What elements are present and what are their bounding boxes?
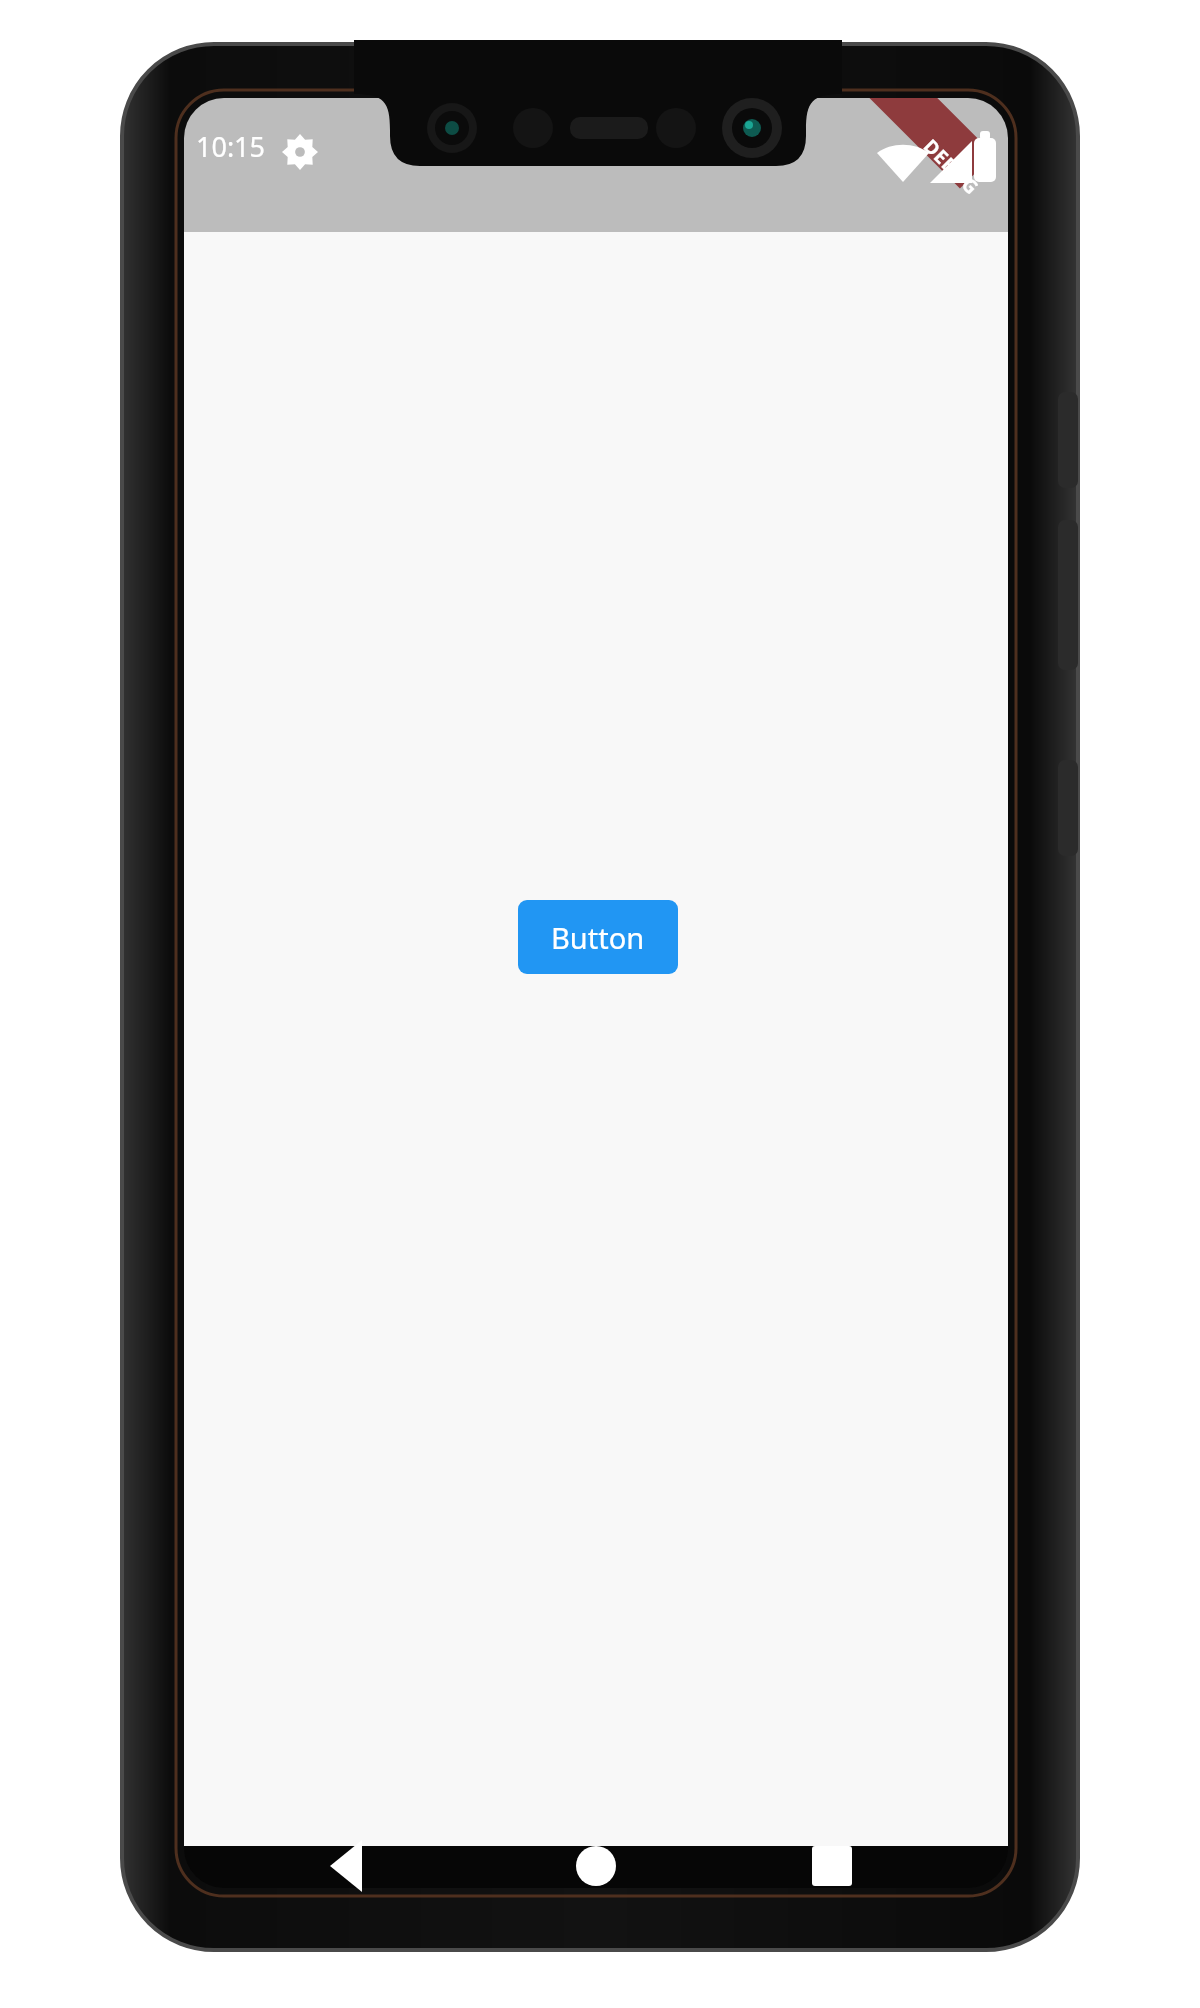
staticText: Button <box>551 918 645 957</box>
other: Debug banner <box>892 108 1010 226</box>
button[interactable]: Button <box>518 900 678 974</box>
staticText: 10:15 <box>196 128 266 165</box>
staticText: DEBUG <box>918 133 985 201</box>
